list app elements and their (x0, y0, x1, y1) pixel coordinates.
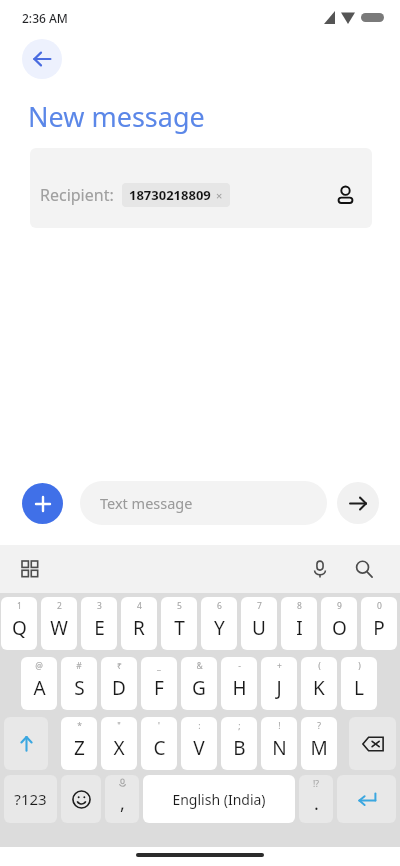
staticText: V (193, 735, 205, 761)
staticText: H (232, 675, 247, 701)
staticText: + (277, 660, 282, 672)
button[interactable]: ?123 (4, 775, 57, 823)
staticText: S (74, 675, 85, 701)
staticText: C (153, 735, 166, 761)
button[interactable]: 7 (241, 597, 277, 650)
button[interactable]: & (181, 657, 217, 710)
button[interactable]: Backspace (349, 717, 396, 770)
staticText: B (233, 735, 246, 761)
staticText: T (174, 615, 185, 641)
staticText: _ (157, 660, 161, 672)
button[interactable]: 0 (361, 597, 397, 650)
button[interactable]: _ (141, 657, 177, 710)
button[interactable]: + (261, 657, 297, 710)
button[interactable]: !? (299, 775, 333, 823)
staticText: 9 (337, 600, 342, 612)
staticText: " (117, 720, 121, 732)
staticText: F (154, 675, 164, 701)
button[interactable]: - (221, 657, 257, 710)
button[interactable]: ₹ (101, 657, 137, 710)
staticText: English (India) (172, 790, 266, 809)
button[interactable]: Shift (4, 717, 48, 770)
button[interactable]: 2 (41, 597, 77, 650)
button[interactable]: Comma (105, 775, 139, 823)
button[interactable]: ) (341, 657, 377, 710)
staticText: : (198, 720, 201, 732)
staticText: A (33, 675, 46, 701)
staticText: ? (317, 720, 321, 732)
staticText: New message (28, 98, 205, 135)
button[interactable]: 1 (1, 597, 37, 650)
staticText: & (196, 660, 203, 672)
button[interactable]: 4 (121, 597, 157, 650)
button[interactable]: Search (344, 549, 384, 589)
button[interactable]: : (181, 717, 217, 770)
button[interactable]: # (61, 657, 97, 710)
staticText: X (113, 735, 125, 761)
staticText: I (296, 615, 303, 641)
staticText: D (112, 675, 126, 701)
staticText: Text message (100, 493, 193, 513)
staticText: ?123 (14, 789, 47, 809)
staticText: P (373, 615, 385, 641)
staticText: 8 (297, 600, 302, 612)
button[interactable]: ; (221, 717, 257, 770)
button[interactable]: ! (261, 717, 297, 770)
staticText: Y (214, 615, 225, 641)
staticText: 7 (257, 600, 262, 612)
staticText: ; (238, 720, 241, 732)
button[interactable]: 3 (81, 597, 117, 650)
staticText: 6 (217, 600, 222, 612)
staticText: O (332, 615, 347, 641)
button[interactable]: Add attachment (22, 483, 63, 524)
staticText: ! (278, 720, 281, 732)
staticText: - (238, 660, 241, 672)
staticText: U (252, 615, 266, 641)
staticText: Q (12, 615, 27, 641)
staticText: K (313, 675, 325, 701)
staticText: 18730218809 (129, 186, 211, 204)
staticText: ₹ (117, 660, 122, 672)
button[interactable]: 9 (321, 597, 357, 650)
staticText: 4 (137, 600, 142, 612)
button[interactable]: ( (301, 657, 337, 710)
button[interactable]: 8 (281, 597, 317, 650)
staticText: , (120, 791, 125, 816)
staticText: Recipient: (40, 184, 114, 206)
staticText: * (77, 720, 82, 732)
button[interactable]: ' (141, 717, 177, 770)
staticText: L (354, 675, 364, 701)
staticText: W (50, 615, 68, 641)
staticText: J (276, 675, 282, 701)
staticText: Z (74, 735, 85, 761)
staticText: 2 (57, 600, 62, 612)
button[interactable]: Recipient: (30, 148, 372, 228)
staticText: @ (35, 660, 43, 672)
button[interactable]: 6 (201, 597, 237, 650)
staticText: R (133, 615, 145, 641)
button[interactable]: Send (337, 482, 379, 524)
button[interactable]: Contacts (330, 180, 360, 210)
button[interactable]: * (61, 717, 97, 770)
staticText: 1 (17, 600, 22, 612)
staticText: !? (313, 778, 319, 790)
button[interactable]: 18730218809 (122, 183, 230, 207)
button[interactable]: " (101, 717, 137, 770)
button[interactable]: Enter (337, 775, 396, 823)
staticText: ' (158, 720, 160, 732)
button[interactable]: Emoji (61, 775, 101, 823)
button[interactable]: Back (22, 39, 62, 79)
staticText: 3 (97, 600, 102, 612)
staticText: 2:36 AM (22, 10, 68, 26)
button[interactable]: Text message (80, 481, 327, 525)
staticText: N (272, 735, 287, 761)
button[interactable]: English (India) (143, 775, 295, 823)
staticText: ( (318, 660, 321, 672)
staticText: # (76, 660, 82, 672)
button[interactable]: Voice input (300, 549, 340, 589)
staticText: G (192, 675, 206, 701)
button[interactable]: @ (21, 657, 57, 710)
button[interactable]: 5 (161, 597, 197, 650)
button[interactable]: Toolbar (10, 549, 50, 589)
button[interactable]: ? (301, 717, 337, 770)
